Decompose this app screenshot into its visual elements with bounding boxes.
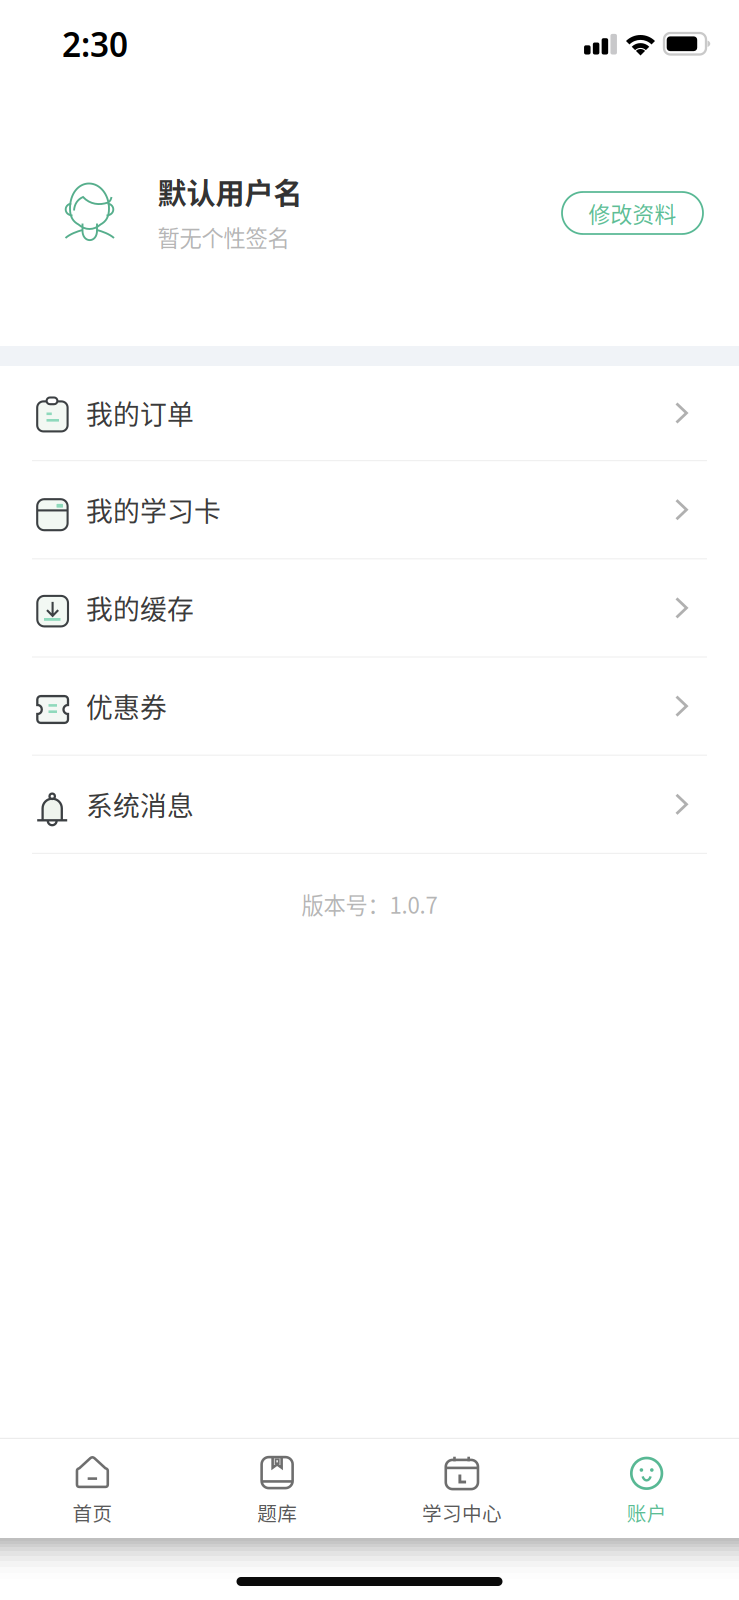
button[interactable]: 账户 bbox=[554, 1442, 739, 1535]
button[interactable]: 我的缓存 bbox=[0, 559, 739, 656]
button[interactable]: 修改资料 bbox=[562, 192, 703, 234]
staticText: 优惠券 bbox=[86, 687, 167, 725]
button[interactable]: 优惠券 bbox=[0, 658, 739, 755]
staticText: 系统消息 bbox=[86, 785, 194, 824]
staticText: 题库 bbox=[257, 1498, 297, 1527]
staticText: 我的学习卡 bbox=[86, 490, 221, 529]
staticText: 默认用户名 bbox=[157, 171, 302, 213]
staticText: 学习中心 bbox=[422, 1498, 502, 1527]
button[interactable]: 题库 bbox=[185, 1442, 370, 1535]
staticText: 我的订单 bbox=[86, 394, 194, 432]
button[interactable]: 首页 bbox=[0, 1442, 185, 1535]
button[interactable]: 学习中心 bbox=[369, 1442, 554, 1535]
staticText: 暂无个性签名 bbox=[157, 221, 289, 253]
staticText: 2:30 bbox=[62, 22, 128, 66]
button[interactable]: 我的订单 bbox=[0, 366, 739, 460]
staticText: 我的缓存 bbox=[86, 588, 194, 627]
staticText: 修改资料 bbox=[588, 197, 676, 229]
button[interactable]: 系统消息 bbox=[0, 756, 739, 853]
button[interactable]: 我的学习卡 bbox=[0, 461, 739, 558]
staticText: 版本号：1.0.7 bbox=[301, 888, 437, 920]
staticText: 首页 bbox=[72, 1498, 112, 1527]
staticText: 账户 bbox=[627, 1498, 667, 1527]
